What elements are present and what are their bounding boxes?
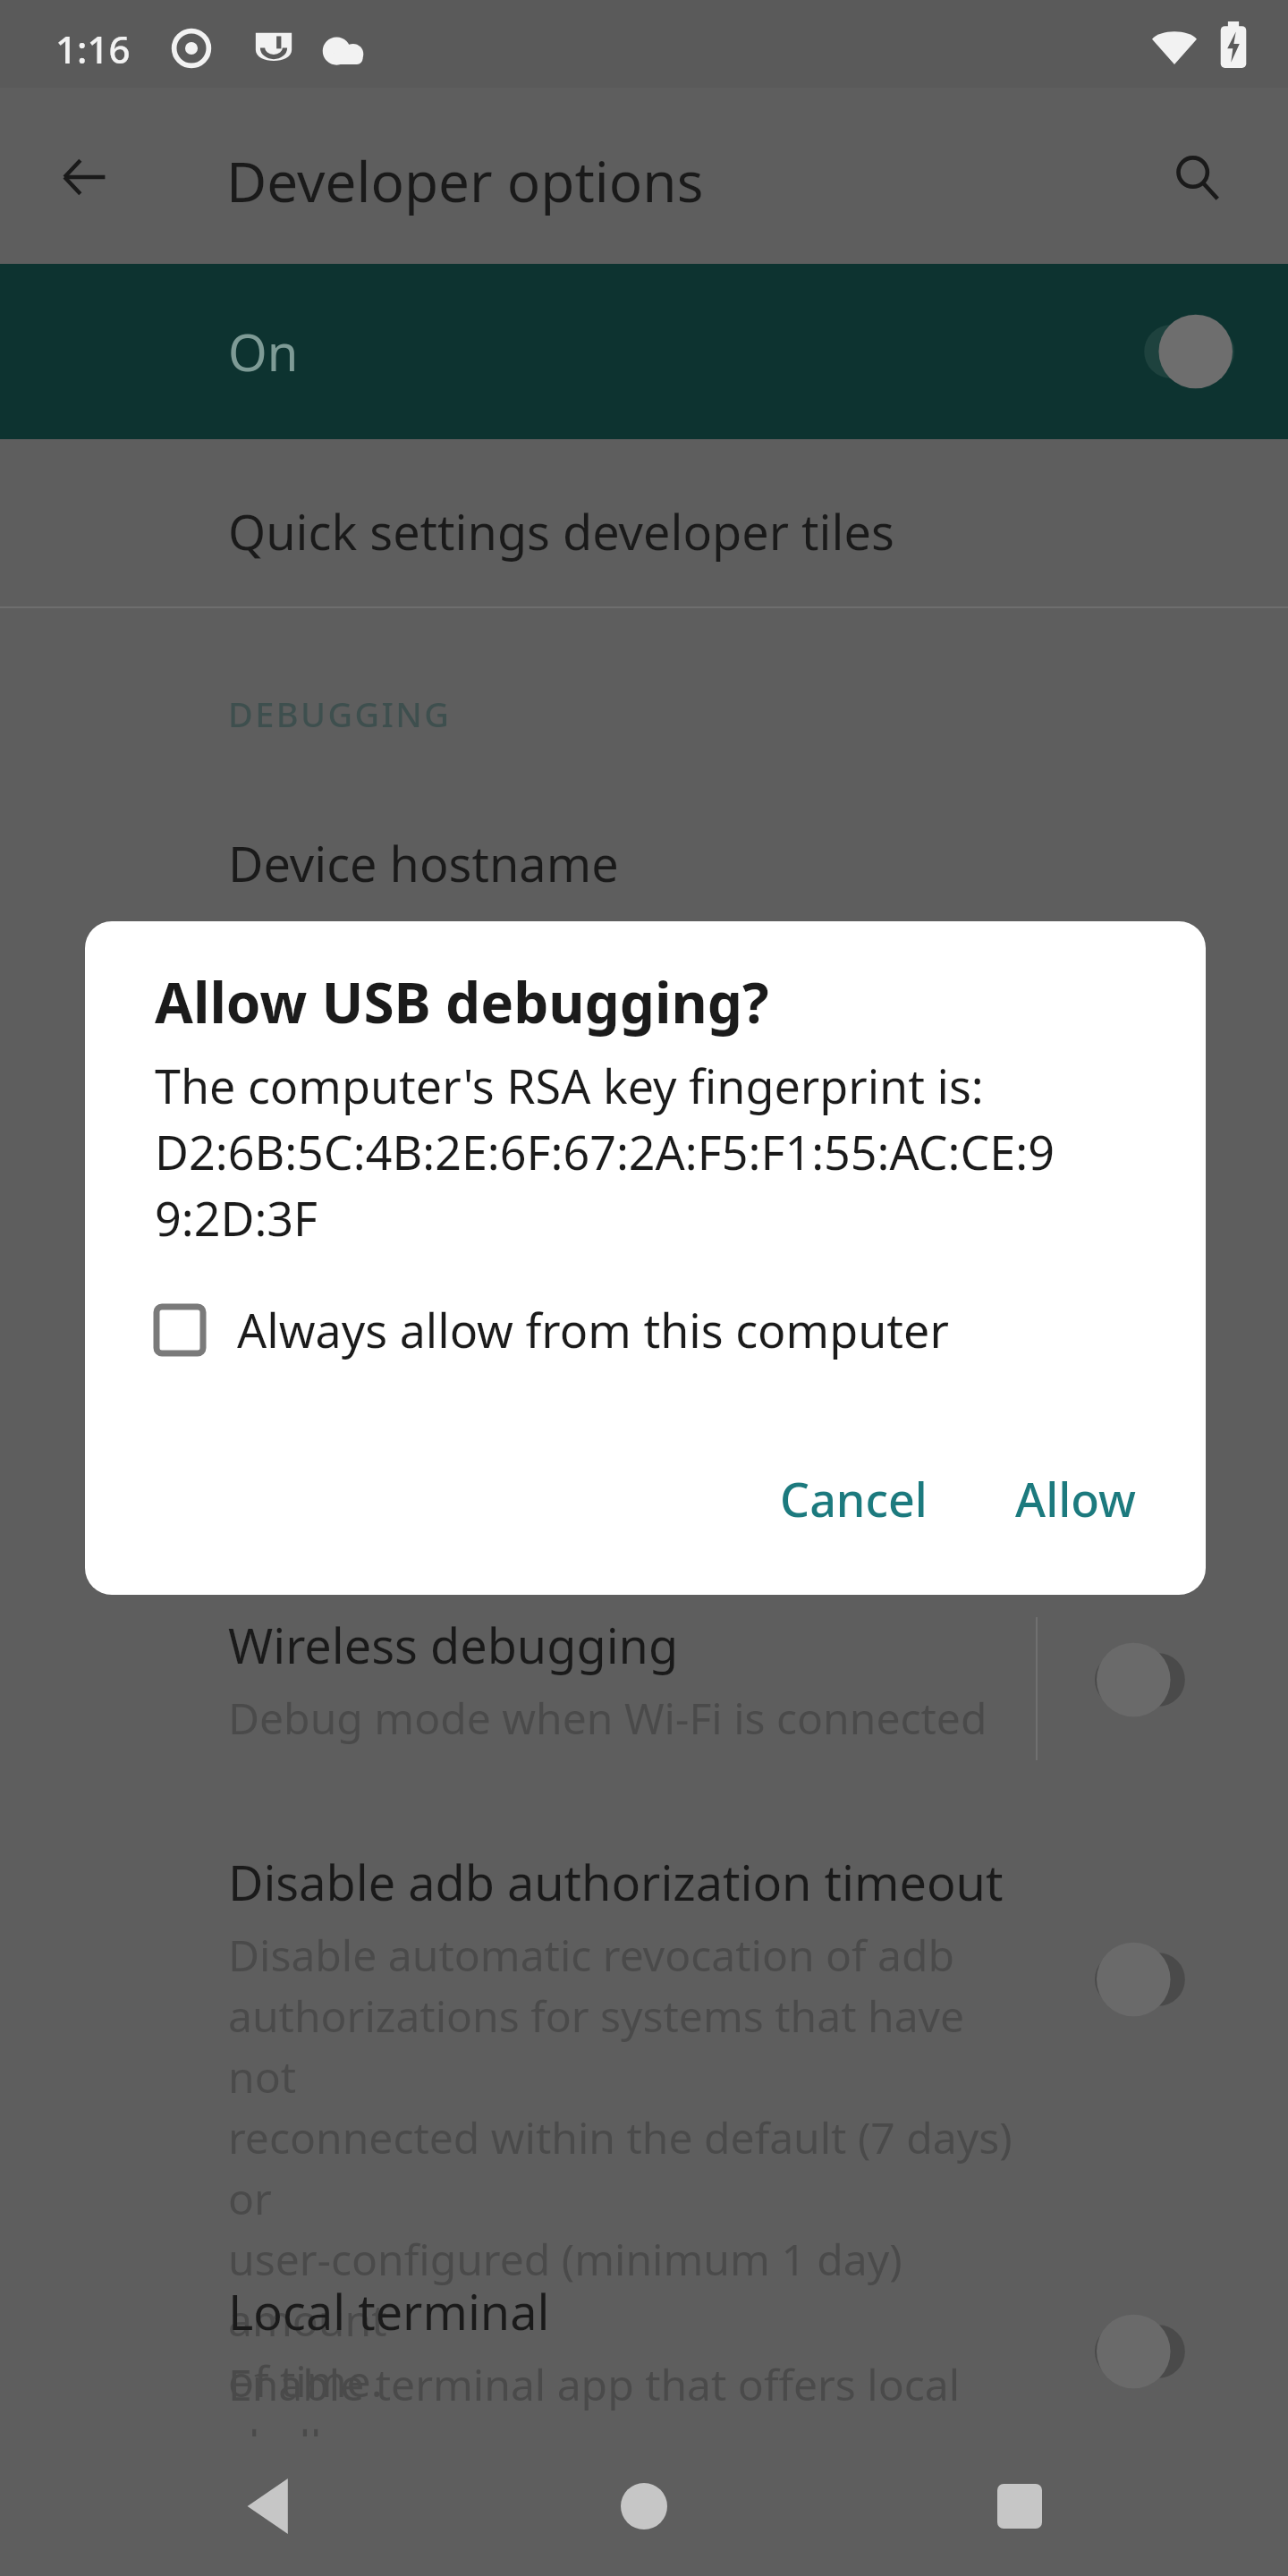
button[interactable]: Wireless debugging (0, 1601, 1288, 1758)
button[interactable]: Recent apps (975, 2462, 1064, 2551)
button[interactable]: Allow (987, 1449, 1165, 1548)
button[interactable]: Search (1154, 134, 1240, 220)
button[interactable]: Wireless debugging (1095, 1637, 1238, 1723)
staticText: Wireless debugging (228, 1612, 679, 1678)
button[interactable]: Back (41, 134, 127, 220)
button[interactable]: Home (599, 2462, 689, 2551)
staticText: Allow USB debugging? (155, 964, 769, 1039)
staticText: DEBUGGING (228, 691, 452, 737)
button[interactable]: Quick settings developer tiles (0, 491, 1288, 607)
staticText: Debug mode when Wi-Fi is connected (228, 1689, 987, 1747)
staticText: Cancel (780, 1467, 928, 1530)
staticText: 1:16 (55, 23, 131, 74)
button[interactable]: Always allow from this computer (85, 1292, 1206, 1367)
button[interactable]: Disable adb authorization timeout (0, 1838, 1288, 2420)
staticText: Always allow from this computer (237, 1298, 949, 1361)
staticText: Quick settings developer tiles (228, 498, 894, 564)
staticText: Local terminal (228, 2278, 550, 2344)
button[interactable]: Device hostname (0, 823, 1288, 939)
staticText: Disable adb authorization timeout (228, 1849, 1004, 1915)
staticText: On (228, 318, 299, 386)
staticText: Developer options (226, 143, 704, 218)
staticText: The computer's RSA key fingerprint is: D… (155, 1054, 1055, 1250)
button[interactable]: Local terminal (1095, 2309, 1238, 2394)
button[interactable]: On (0, 264, 1288, 439)
staticText: Allow (1015, 1467, 1136, 1530)
button[interactable]: Back (224, 2462, 313, 2551)
button[interactable]: Local terminal (0, 2267, 1288, 2546)
staticText: Device hostname (228, 830, 619, 896)
staticText: Enable terminal app that offers local sh… (228, 2355, 1038, 2535)
button[interactable]: Cancel (751, 1449, 956, 1548)
button[interactable]: Disable adb authorization timeout (1095, 1936, 1238, 2022)
staticText: Disable automatic revocation of adb auth… (228, 1926, 1038, 2410)
